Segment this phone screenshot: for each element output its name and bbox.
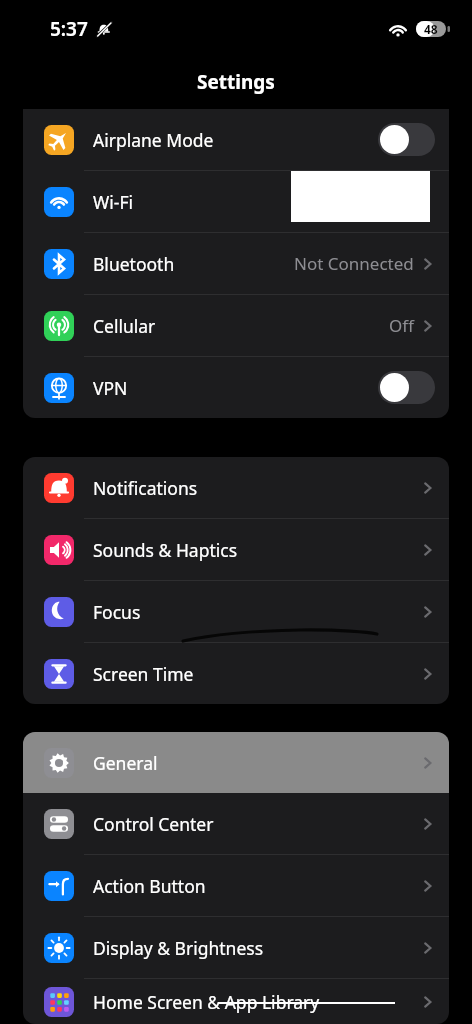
- staticText: Wi-Fi: [93, 190, 134, 214]
- staticText: Screen Time: [93, 662, 194, 686]
- staticText: Sounds & Haptics: [93, 538, 238, 562]
- button[interactable]: Wi-Fi: [23, 171, 449, 232]
- button[interactable]: Notifications: [23, 457, 449, 518]
- staticText: Settings: [197, 69, 275, 95]
- button[interactable]: Focus: [23, 581, 449, 642]
- staticText: 48: [424, 21, 438, 37]
- button[interactable]: Control Center: [23, 793, 449, 854]
- button[interactable]: Sounds & Haptics: [23, 519, 449, 580]
- staticText: Cellular: [93, 314, 156, 338]
- staticText: Notifications: [93, 476, 198, 500]
- button[interactable]: VPN: [23, 357, 449, 418]
- button[interactable]: Toggle: [378, 123, 435, 156]
- button[interactable]: Display & Brightness: [23, 917, 449, 978]
- staticText: VPN: [93, 376, 128, 400]
- staticText: Home Screen & App Library: [93, 990, 320, 1014]
- button[interactable]: Screen Time: [23, 643, 449, 704]
- button[interactable]: Toggle: [378, 371, 435, 404]
- staticText: 5:37: [50, 16, 88, 42]
- staticText: Action Button: [93, 874, 206, 898]
- button[interactable]: Home Screen & App Library: [23, 979, 449, 1024]
- staticText: Not Connected: [294, 252, 414, 275]
- staticText: Display & Brightness: [93, 936, 264, 960]
- button[interactable]: General: [23, 732, 449, 793]
- button[interactable]: Airplane Mode: [23, 109, 449, 170]
- staticText: Airplane Mode: [93, 128, 214, 152]
- staticText: Control Center: [93, 812, 214, 836]
- button[interactable]: Bluetooth: [23, 233, 449, 294]
- staticText: General: [93, 751, 158, 775]
- button[interactable]: Cellular: [23, 295, 449, 356]
- staticText: Bluetooth: [93, 252, 175, 276]
- staticText: Focus: [93, 600, 141, 624]
- button[interactable]: Action Button: [23, 855, 449, 916]
- staticText: Off: [389, 314, 414, 337]
